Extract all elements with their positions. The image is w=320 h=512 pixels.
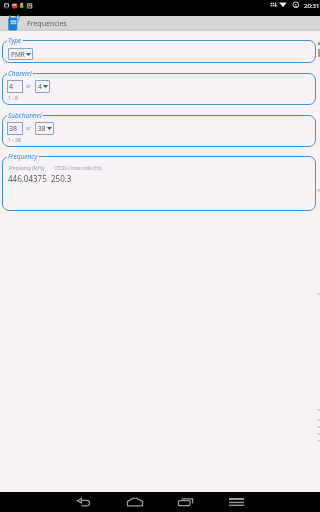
button[interactable]: Home [109, 492, 160, 512]
staticText: 446.04375 [8, 173, 47, 184]
button[interactable]: Back [58, 492, 109, 512]
button[interactable]: Menu [211, 492, 262, 512]
staticText: PMR [11, 50, 25, 59]
button[interactable]: 38 [35, 122, 54, 135]
button[interactable]: PMR [8, 48, 33, 60]
staticText: Frequency [8, 152, 38, 161]
staticText: 250.3 [51, 173, 72, 184]
button[interactable]: 4 [35, 80, 50, 93]
staticText: Frequency (MHz) [9, 165, 45, 171]
staticText: 4 [38, 82, 42, 91]
staticText: or [26, 125, 32, 132]
staticText: 4 [9, 82, 14, 92]
button[interactable]: Recents [160, 492, 211, 512]
staticText: or [26, 83, 32, 90]
staticText: 38 [38, 124, 46, 133]
staticText: Type [8, 36, 22, 45]
staticText: Channel [8, 69, 32, 78]
button[interactable]: 38 [7, 122, 23, 135]
staticText: 38 [9, 124, 18, 134]
staticText: 20:31 [304, 2, 320, 10]
staticText: 1 - 38 [8, 137, 21, 144]
staticText: CTCSS / tone code (Hz) [54, 165, 102, 171]
staticText: 1 - 8 [8, 95, 18, 102]
staticText: Frequencies [27, 19, 67, 29]
staticText: Subchannel [8, 111, 42, 120]
button[interactable]: 4 [7, 80, 23, 93]
